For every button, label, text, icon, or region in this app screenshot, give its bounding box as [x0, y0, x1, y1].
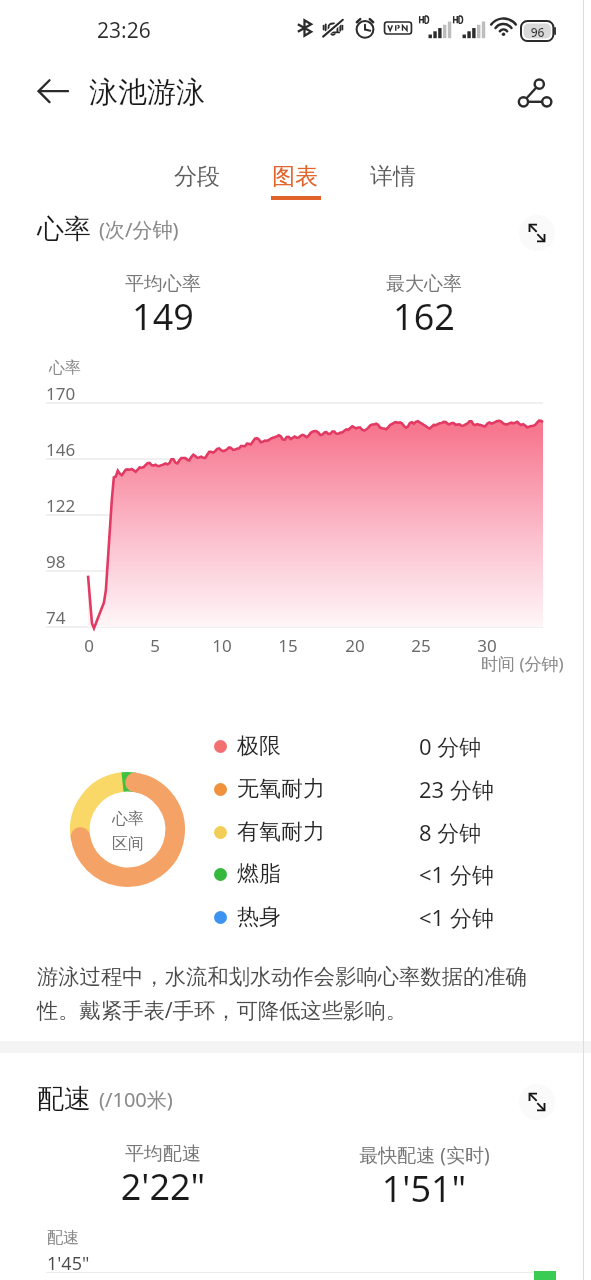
- staticText: 8 分钟: [419, 817, 482, 847]
- staticText: 有氧耐力: [237, 818, 433, 846]
- staticText: 96: [521, 24, 554, 40]
- staticText: 泳池游泳: [89, 74, 205, 111]
- staticText: 23:26: [97, 16, 151, 45]
- staticText: 146: [46, 438, 82, 461]
- staticText: 平均配速: [125, 1142, 201, 1166]
- button[interactable]: 热身: [210, 896, 540, 938]
- button[interactable]: Back: [26, 71, 68, 113]
- staticText: 10: [202, 634, 242, 657]
- staticText: 5: [135, 634, 175, 657]
- staticText: 170: [46, 382, 82, 405]
- staticText: 最快配速 (实时): [359, 1142, 490, 1168]
- staticText: 详情: [370, 162, 416, 191]
- staticText: 122: [46, 494, 82, 517]
- staticText: (/100米): [99, 1086, 173, 1113]
- button[interactable]: Expand: [519, 215, 555, 251]
- button[interactable]: 图表: [262, 155, 330, 205]
- staticText: 燃脂: [237, 860, 433, 888]
- staticText: 心率: [49, 358, 81, 378]
- staticText: 15: [268, 634, 308, 657]
- staticText: <1 分钟: [419, 902, 494, 932]
- button[interactable]: Expand: [519, 1084, 555, 1120]
- staticText: 1'51": [334, 1164, 514, 1213]
- staticText: 30: [467, 634, 507, 657]
- button[interactable]: 极限: [210, 725, 540, 767]
- staticText: 23 分钟: [419, 774, 494, 804]
- staticText: 149: [73, 292, 253, 341]
- button[interactable]: 无氧耐力: [210, 768, 540, 810]
- staticText: 162: [334, 292, 514, 341]
- staticText: 时间 (分钟): [481, 652, 564, 675]
- staticText: 无氧耐力: [237, 775, 433, 803]
- staticText: 25: [401, 634, 441, 657]
- staticText: 游泳过程中，水流和划水动作会影响心率数据的准确 性。戴紧手表/手环，可降低这些影…: [37, 963, 527, 1024]
- staticText: 配速: [47, 1228, 79, 1248]
- staticText: 98: [46, 550, 82, 573]
- staticText: 心率: [112, 809, 144, 829]
- staticText: 分段: [174, 162, 220, 191]
- staticText: 74: [46, 606, 82, 629]
- staticText: 0 分钟: [419, 731, 482, 761]
- staticText: 2'22": [73, 1162, 253, 1211]
- staticText: (次/分钟): [99, 216, 179, 243]
- staticText: 1'45": [47, 1251, 90, 1276]
- button[interactable]: 分段: [164, 155, 232, 205]
- button[interactable]: Share: [512, 71, 556, 115]
- button[interactable]: 详情: [360, 155, 428, 205]
- button[interactable]: 燃脂: [210, 853, 540, 895]
- staticText: 区间: [112, 834, 144, 854]
- staticText: 图表: [272, 162, 318, 191]
- staticText: 最大心率: [386, 272, 462, 296]
- staticText: 配速: [37, 1082, 91, 1116]
- staticText: <1 分钟: [419, 859, 494, 889]
- staticText: 极限: [237, 732, 433, 760]
- staticText: 心率: [37, 212, 91, 246]
- staticText: 平均心率: [125, 272, 201, 296]
- button[interactable]: 有氧耐力: [210, 811, 540, 853]
- staticText: 0: [69, 634, 109, 657]
- staticText: 热身: [237, 903, 433, 931]
- staticText: 20: [335, 634, 375, 657]
